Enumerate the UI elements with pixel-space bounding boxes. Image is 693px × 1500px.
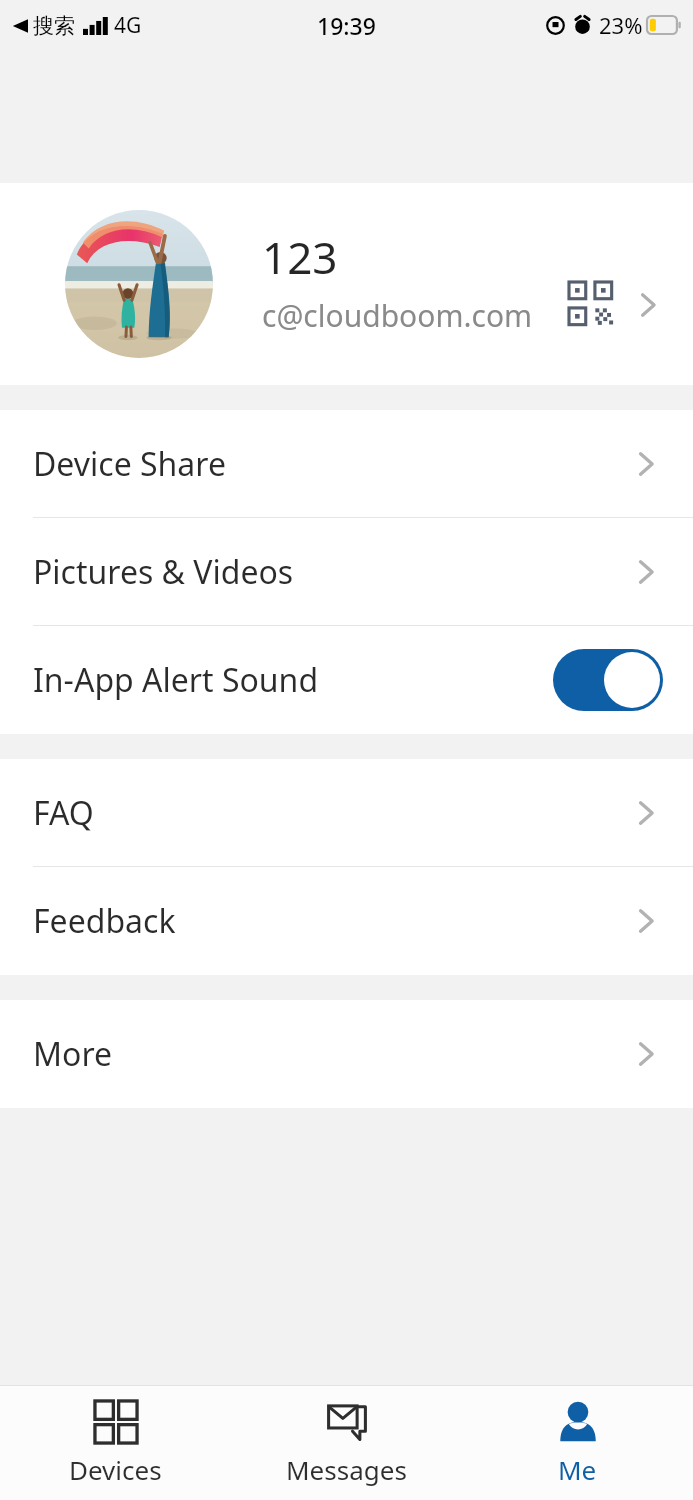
staticText: In-App Alert Sound [33, 658, 319, 702]
staticText: c@cloudboom.com [262, 295, 533, 336]
staticText: Feedback [33, 899, 176, 943]
button[interactable]: Device Share [0, 410, 693, 518]
staticText: 123 [262, 227, 338, 287]
staticText: 4G [114, 11, 142, 40]
button[interactable]: In-App Alert Sound [0, 626, 693, 734]
button[interactable]: Pictures & Videos [0, 518, 693, 626]
button[interactable]: 123 [0, 183, 693, 385]
button[interactable]: Feedback [0, 867, 693, 975]
staticText: Device Share [33, 442, 226, 486]
staticText: 搜索 [33, 13, 75, 39]
staticText: More [33, 1032, 113, 1076]
button[interactable]: More [0, 1000, 693, 1108]
staticText: 23% [599, 10, 643, 40]
button[interactable]: QR code [569, 282, 615, 328]
staticText: Devices [69, 1452, 162, 1487]
staticText: Pictures & Videos [33, 550, 294, 594]
button[interactable]: Me [462, 1386, 693, 1500]
button[interactable]: FAQ [0, 759, 693, 867]
button[interactable]: Devices [0, 1386, 231, 1500]
staticText: 19:39 [317, 10, 376, 41]
staticText: Me [558, 1452, 597, 1487]
staticText: FAQ [33, 791, 94, 835]
staticText: Messages [286, 1452, 407, 1487]
button[interactable]: Messages [231, 1386, 462, 1500]
